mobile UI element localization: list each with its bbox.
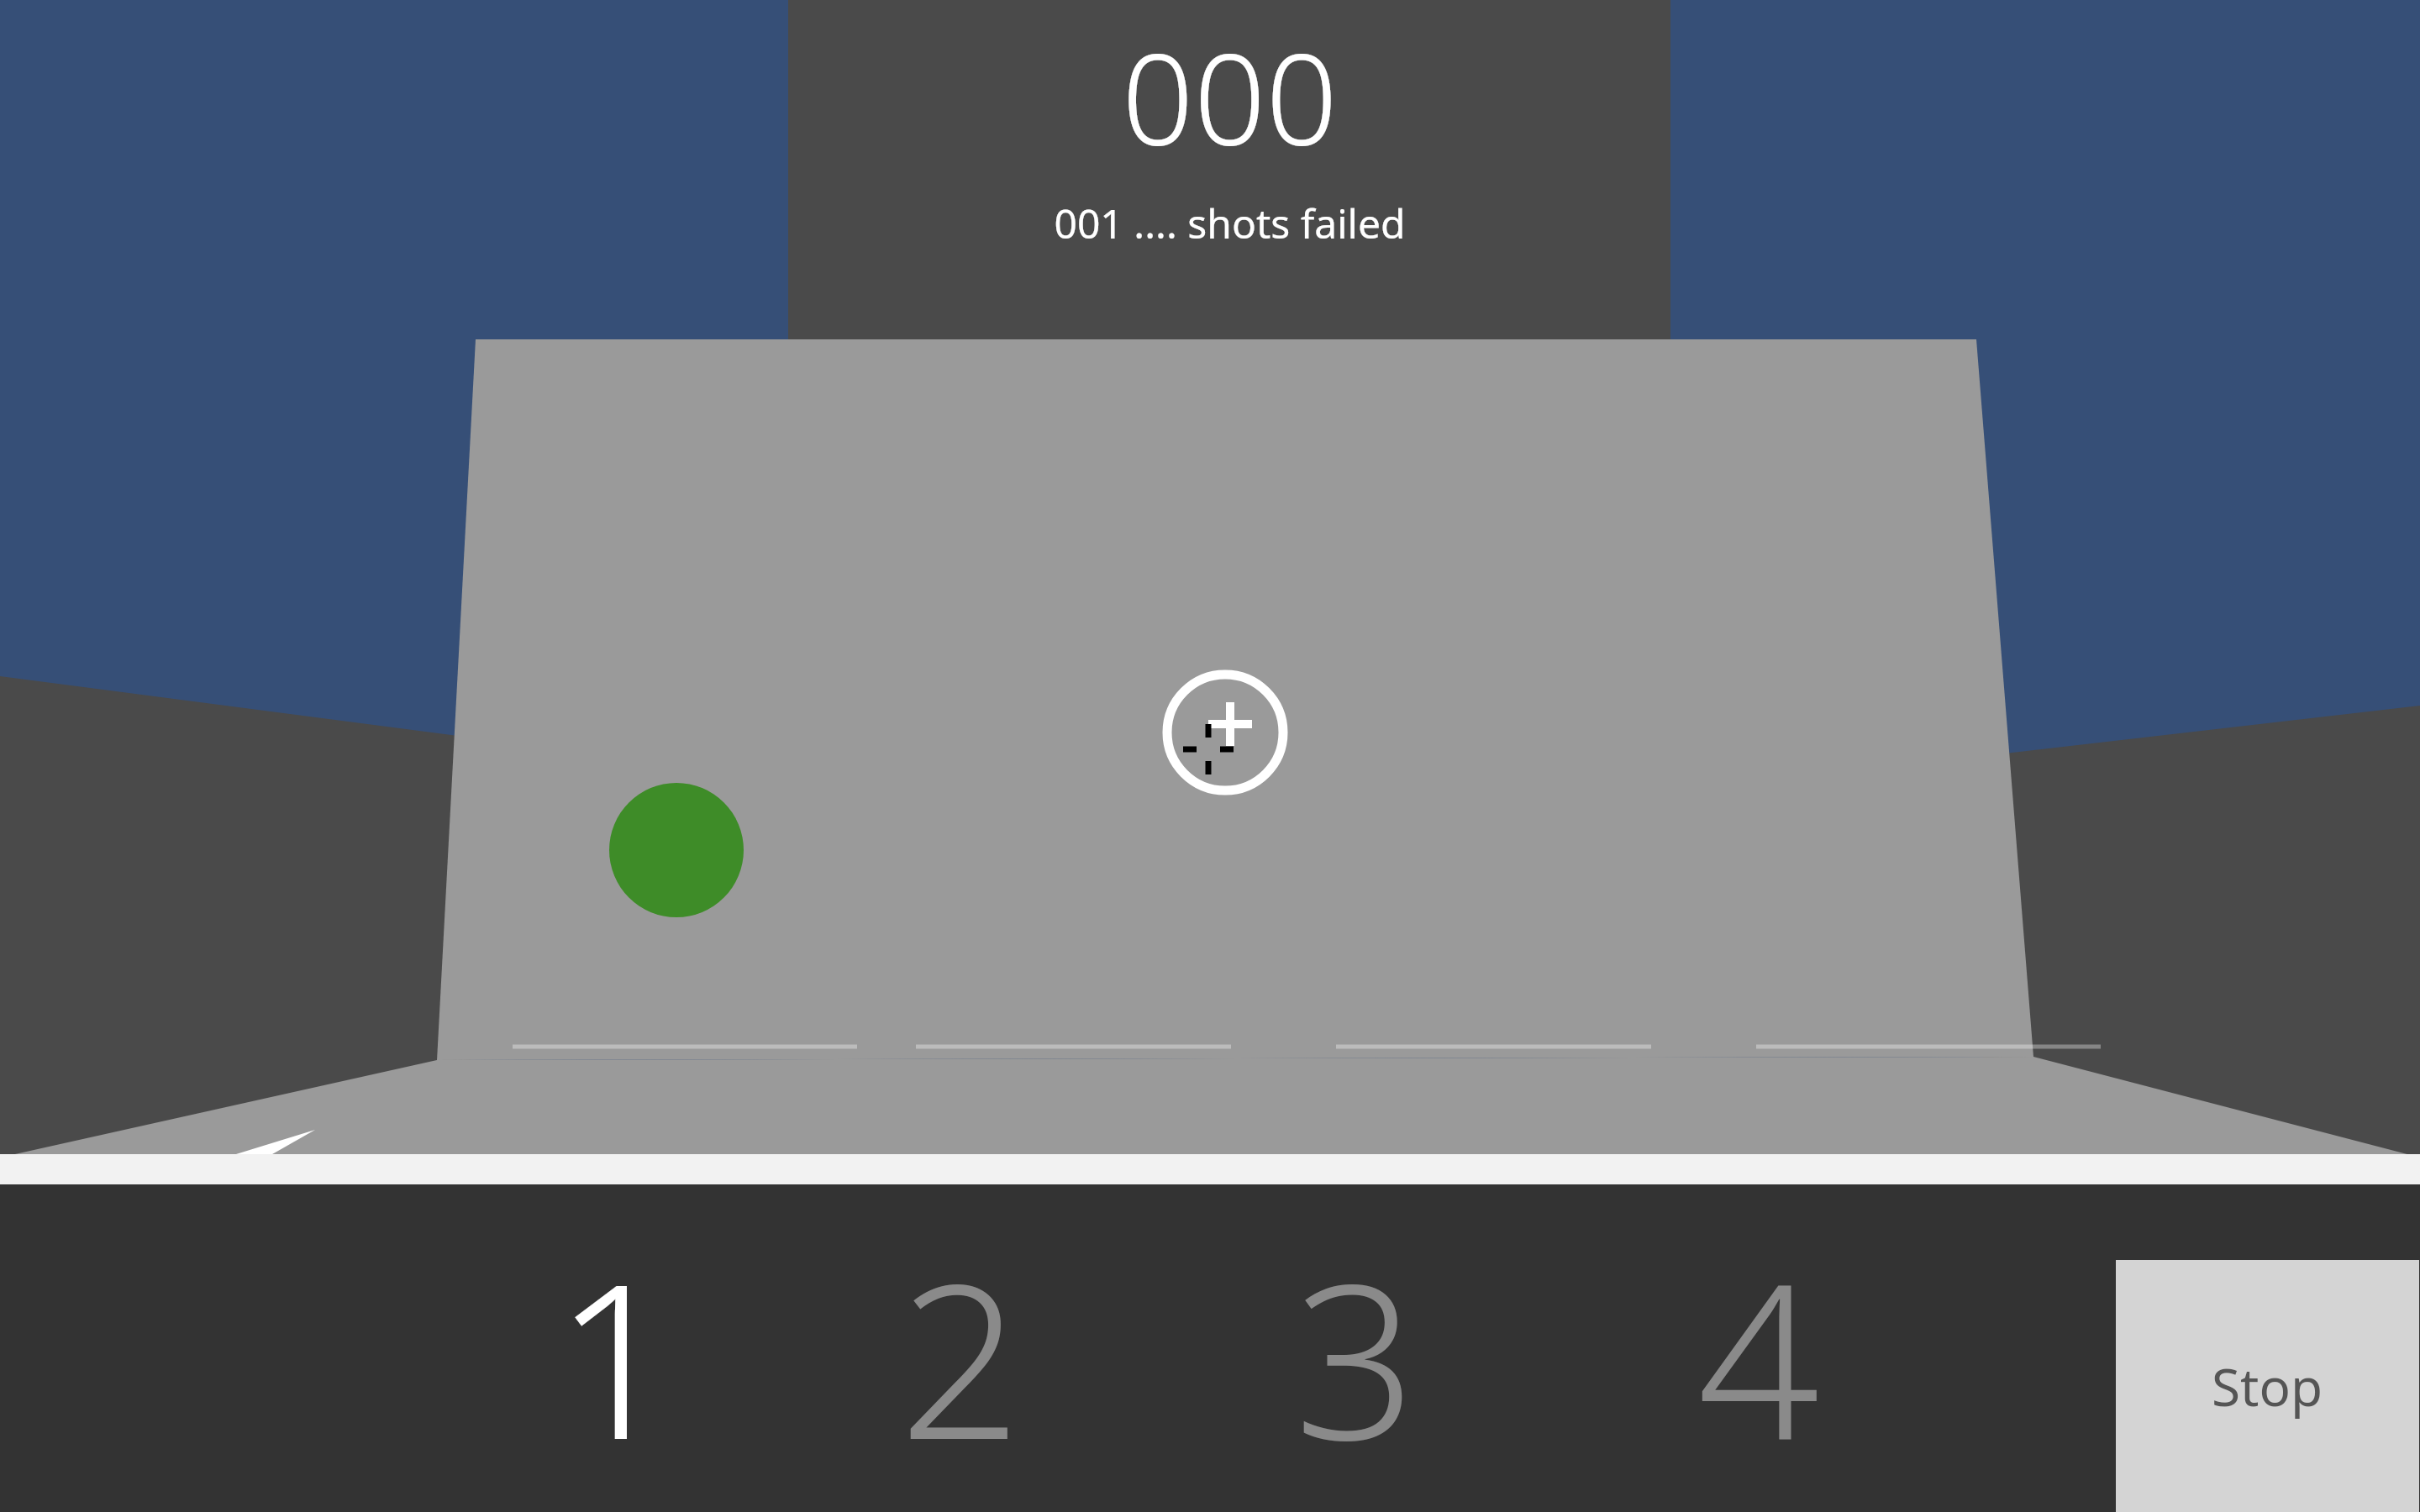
staticText: 001 .... shots failed	[1054, 196, 1406, 250]
button[interactable]: 3	[1294, 1210, 1597, 1512]
button[interactable]: 4	[1697, 1210, 2000, 1512]
staticText: 2	[899, 1210, 1022, 1501]
staticText: Stop	[2212, 1351, 2323, 1421]
button[interactable]: 1	[555, 1210, 857, 1512]
staticText: 3	[1294, 1210, 1417, 1501]
staticText: 1	[555, 1210, 677, 1501]
button[interactable]: 2	[899, 1210, 1202, 1512]
button[interactable]: Stop	[2116, 1260, 2419, 1512]
staticText: 000	[1122, 11, 1338, 182]
button[interactable]: Aim crosshair	[1151, 664, 1302, 815]
staticText: 4	[1697, 1210, 1820, 1501]
